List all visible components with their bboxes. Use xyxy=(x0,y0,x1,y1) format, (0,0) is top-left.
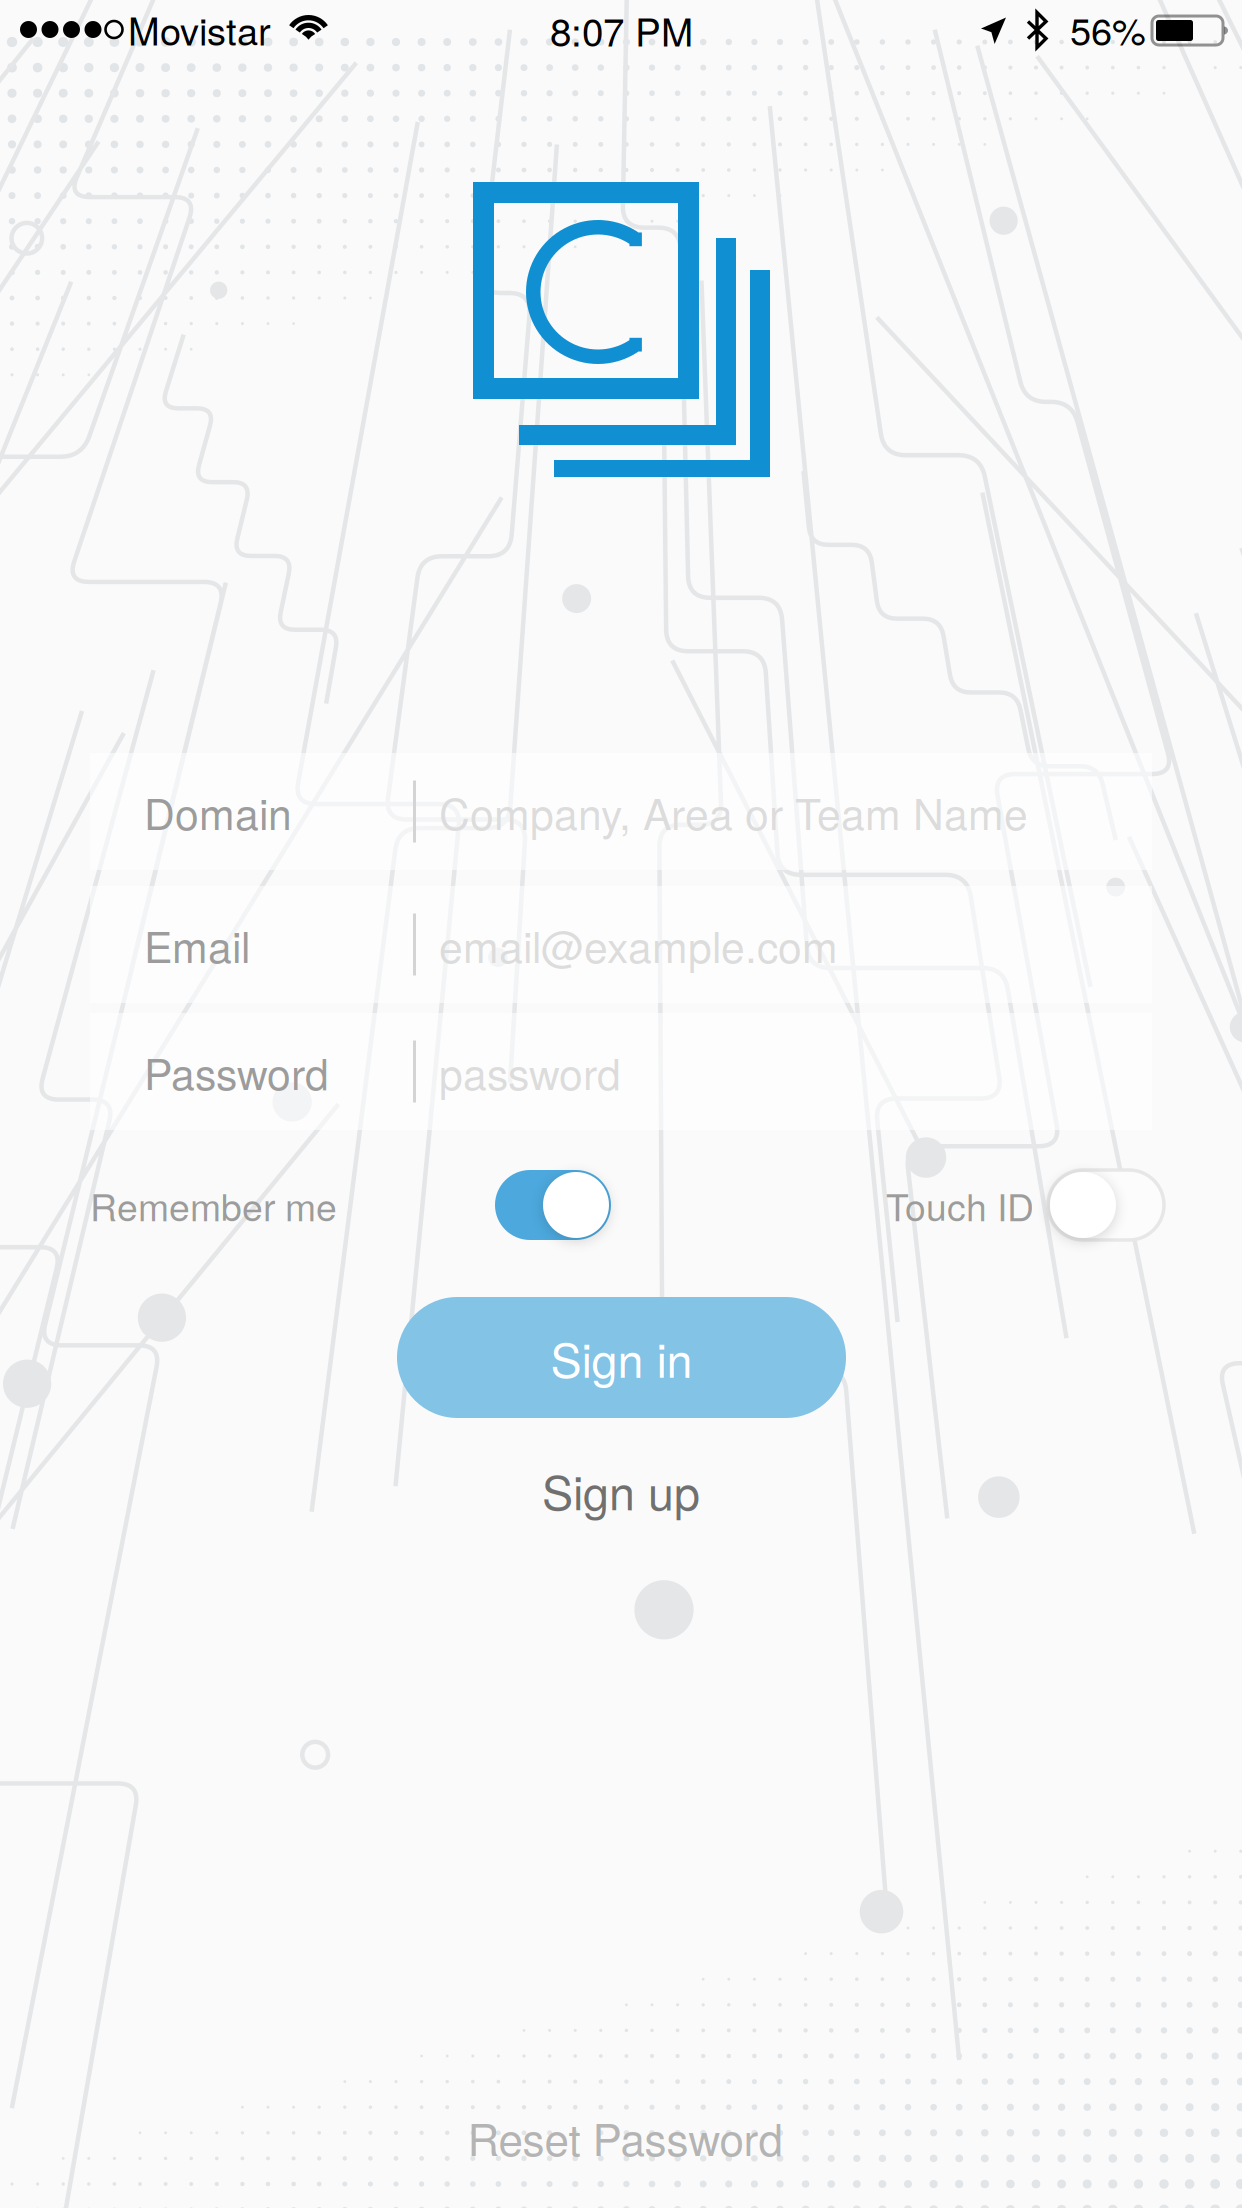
staticText: 56% xyxy=(1070,2,1146,56)
staticText: Sign up xyxy=(542,1457,700,1523)
staticText: Domain xyxy=(144,781,292,842)
button[interactable]: Remember me xyxy=(90,1170,611,1240)
staticText: password xyxy=(439,1041,621,1102)
staticText: email@example.com xyxy=(439,914,838,975)
button[interactable]: Sign up xyxy=(471,1450,771,1530)
staticText: 8:07 PM xyxy=(550,2,693,57)
button[interactable]: Password xyxy=(90,1013,1152,1130)
button[interactable]: Reset Password xyxy=(375,2097,875,2177)
button[interactable]: Domain xyxy=(90,753,1152,870)
button[interactable]: Touch ID xyxy=(886,1170,1163,1240)
staticText: Sign in xyxy=(550,1324,692,1391)
staticText: Password xyxy=(144,1041,329,1102)
staticText: Email xyxy=(144,914,250,975)
button[interactable]: Sign in xyxy=(397,1297,846,1418)
staticText: Remember me xyxy=(90,1178,337,1232)
staticText: Company, Area or Team Name xyxy=(439,781,1028,842)
staticText: Movistar xyxy=(128,2,271,56)
staticText: Touch ID xyxy=(886,1178,1034,1232)
staticText: Reset Password xyxy=(467,2105,782,2168)
button[interactable]: Email xyxy=(90,886,1152,1003)
